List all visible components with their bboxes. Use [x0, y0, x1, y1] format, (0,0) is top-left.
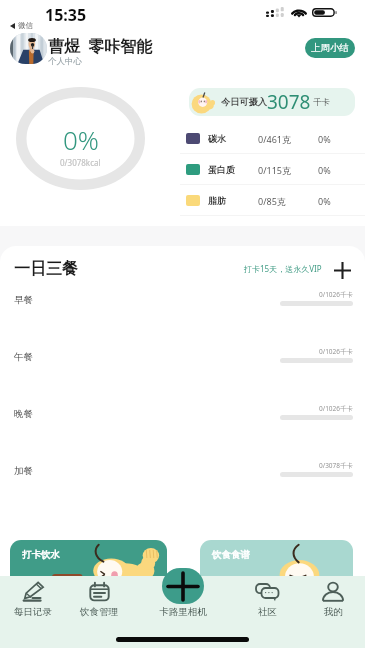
staticText: 曹煜 零咔智能 [48, 35, 153, 57]
staticText: 早餐 [14, 294, 33, 306]
button[interactable]: 卡路里相机 [162, 568, 204, 604]
staticText: 蛋白质 [208, 164, 235, 175]
staticText: 15:35 [45, 4, 87, 26]
staticText: 社区 [258, 606, 277, 618]
button[interactable]: 今日可摄入 [189, 88, 355, 116]
staticText: 脂肪 [208, 195, 226, 206]
staticText: 0/1026千卡 [280, 347, 353, 356]
button[interactable]: 饮食管理 [71, 582, 127, 618]
button[interactable]: 碳水 [180, 123, 365, 154]
button[interactable]: 早餐 [0, 282, 365, 339]
button[interactable]: 我的 [305, 582, 361, 618]
staticText: 0/1026千卡 [280, 290, 353, 299]
staticText: 0/115克 [258, 164, 291, 176]
staticText: 0/1026千卡 [280, 404, 353, 413]
button[interactable]: 添加记录 [332, 260, 353, 281]
button[interactable]: 上周小结 [305, 38, 355, 58]
staticText: 我的 [324, 606, 343, 618]
staticText: 0/3078kcal [60, 157, 101, 168]
staticText: 个人中心 [48, 56, 82, 67]
staticText: 0% [318, 164, 331, 176]
staticText: 每日记录 [14, 606, 52, 618]
button[interactable]: 脂肪 [180, 185, 365, 216]
staticText: 打卡饮水 [22, 549, 60, 561]
staticText: 卡路里相机 [158, 606, 208, 618]
staticText: 午餐 [14, 351, 33, 363]
button[interactable]: 晚餐 [0, 396, 365, 453]
staticText: 0% [318, 133, 331, 145]
staticText: 微信 [18, 21, 33, 30]
button[interactable]: 加餐 [0, 453, 365, 510]
staticText: 碳水 [208, 133, 226, 144]
staticText: 晚餐 [14, 408, 33, 420]
staticText: 0% [63, 122, 99, 157]
staticText: 打卡15天，送永久VIP [244, 263, 322, 274]
staticText: 0% [318, 195, 331, 207]
staticText: 0/3078千卡 [280, 461, 353, 470]
staticText: 饮食食谱 [212, 549, 250, 561]
staticText: 3078 [267, 89, 311, 115]
staticText: 上周小结 [311, 42, 349, 54]
button[interactable]: 饮食食谱 [200, 540, 353, 580]
staticText: 0/461克 [258, 133, 291, 145]
staticText: 今日可摄入 [221, 96, 267, 108]
staticText: 0/85克 [258, 195, 286, 207]
button[interactable]: 打卡饮水 [10, 540, 167, 580]
staticText: 一日三餐 [14, 259, 78, 279]
button[interactable]: 蛋白质 [180, 154, 365, 185]
button[interactable]: 午餐 [0, 339, 365, 396]
button[interactable]: 每日记录 [5, 582, 61, 618]
staticText: 千卡 [313, 97, 330, 108]
staticText: 饮食管理 [80, 606, 118, 618]
staticText: 加餐 [14, 465, 33, 477]
button[interactable]: 社区 [239, 582, 295, 618]
